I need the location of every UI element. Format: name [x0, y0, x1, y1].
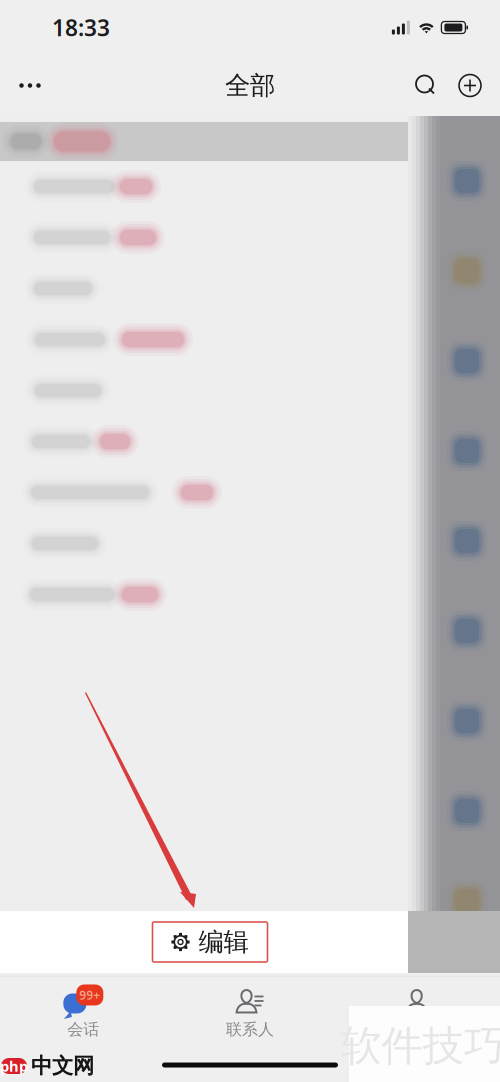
staticText: 会话	[67, 1019, 99, 1039]
staticText: 软件技巧	[340, 1021, 500, 1071]
staticText: 我	[409, 1019, 425, 1039]
button[interactable]: Add	[448, 63, 492, 107]
button[interactable]: 联系人	[167, 976, 333, 1045]
button[interactable]: 编辑	[152, 922, 267, 962]
staticText: 中文网	[31, 1053, 94, 1079]
button[interactable]: 我	[333, 976, 500, 1045]
staticText: 18:33	[52, 12, 110, 42]
button[interactable]: 99+	[0, 976, 167, 1045]
staticText: 99+	[79, 987, 100, 1003]
staticText: 编辑	[198, 926, 248, 957]
staticText: 联系人	[226, 1019, 274, 1039]
staticText: php	[0, 1056, 28, 1076]
button[interactable]: Search	[404, 63, 448, 107]
button[interactable]: More	[8, 63, 52, 107]
staticText: 全部	[225, 70, 275, 101]
